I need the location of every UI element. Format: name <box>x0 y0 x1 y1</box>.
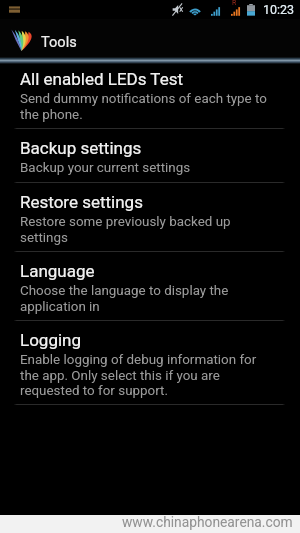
staticText: Restore settings <box>20 192 143 212</box>
staticText: Choose the language to display the appli… <box>20 283 273 314</box>
staticText: Enable logging of debug information for … <box>20 352 273 398</box>
other: Wi-Fi <box>188 4 202 16</box>
other: Tools logo <box>11 28 31 51</box>
staticText: All enabled LEDs Test <box>20 69 184 89</box>
staticText: 10:23 <box>263 2 295 17</box>
staticText: Logging <box>20 330 82 350</box>
other: Battery <box>247 4 255 16</box>
staticText: Language <box>20 261 95 281</box>
button[interactable]: Restore settings <box>0 183 300 251</box>
staticText: www.chinaphonearena.com <box>122 514 293 530</box>
button[interactable]: Tools logo <box>0 19 300 58</box>
staticText: Backup settings <box>20 138 142 158</box>
staticText: Send dummy notifications of each type to… <box>20 91 273 122</box>
staticText: Tools <box>41 33 77 50</box>
button[interactable]: All enabled LEDs Test <box>0 60 300 128</box>
staticText: R <box>232 0 237 7</box>
staticText: Restore some previously backed up settin… <box>20 214 273 245</box>
button[interactable]: Backup settings <box>0 129 300 182</box>
staticText: Backup your current settings <box>20 160 191 176</box>
button[interactable]: Language <box>0 252 300 320</box>
button[interactable]: Logging <box>0 321 300 404</box>
